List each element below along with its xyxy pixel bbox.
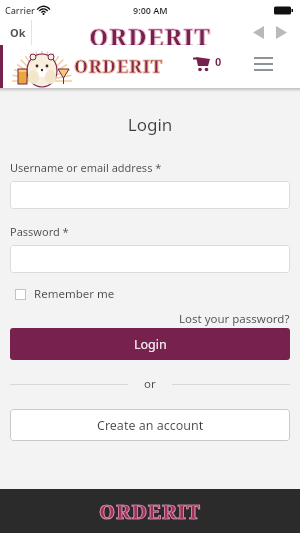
staticText: Ok [10,25,26,40]
staticText: 0 [215,54,222,69]
staticText: 9:00 AM [133,4,168,16]
staticText: ORDERIT [74,54,164,78]
staticText: Login [10,113,290,136]
staticText: Username or email address * [10,160,162,175]
button[interactable]: ORDERIT [74,54,164,78]
button[interactable]: 0 [193,54,222,71]
staticText: Login [134,336,167,353]
button[interactable]: Login [10,328,290,360]
button[interactable]: Ok [6,21,30,44]
staticText: ORDERIT [89,20,212,45]
button[interactable]: Lost your password? [179,311,290,327]
staticText: Create an account [97,417,204,434]
button[interactable] [10,181,290,209]
staticText: Carrier [5,4,35,16]
button[interactable] [253,26,264,39]
button[interactable] [10,245,290,273]
staticText: Password * [10,224,69,239]
button[interactable]: Remember me [10,286,115,302]
staticText: ORDERIT [89,20,212,45]
staticText: Remember me [34,286,115,302]
staticText: ORDERIT [74,54,164,78]
staticText: ORDERIT [99,498,201,525]
button[interactable] [276,26,287,39]
button[interactable]: Create an account [10,409,290,441]
staticText: ORDERIT [99,498,201,525]
button[interactable] [254,57,273,71]
staticText: or [144,376,156,392]
